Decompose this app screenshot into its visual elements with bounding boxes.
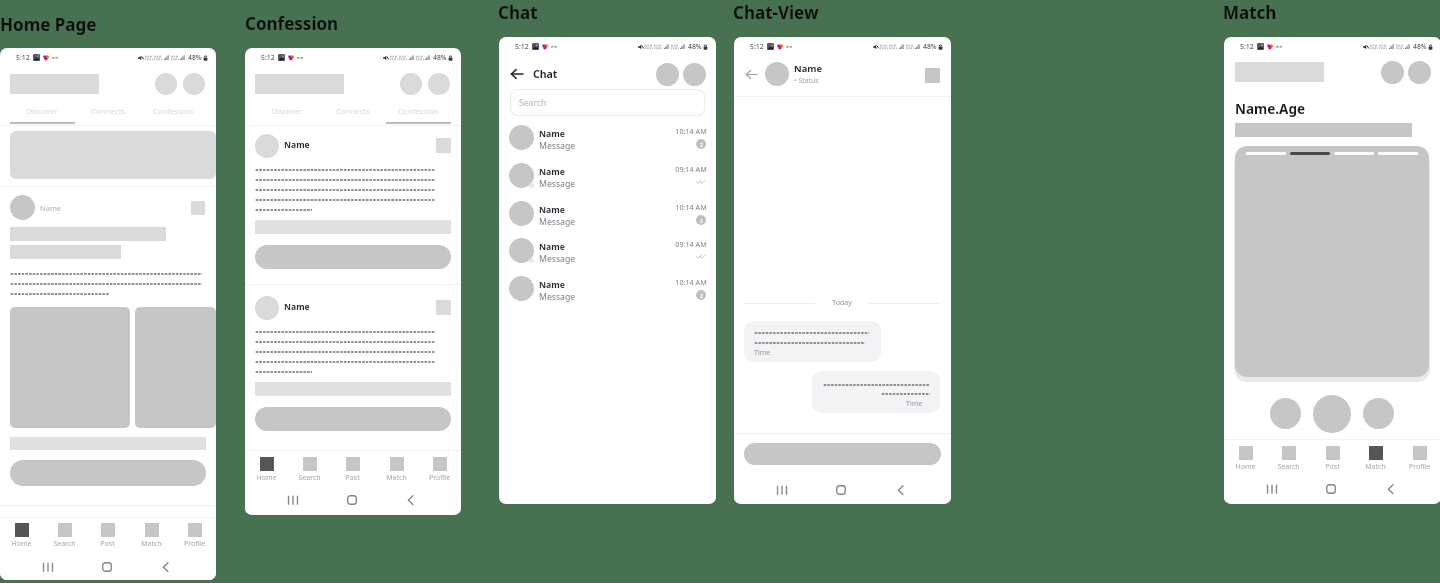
- button[interactable]: Home: [0, 520, 43, 548]
- button[interactable]: Back: [1383, 481, 1399, 497]
- button[interactable]: Contact avatar: [765, 62, 789, 86]
- staticText: • Status: [794, 76, 819, 85]
- button[interactable]: Name: [40, 203, 62, 213]
- button[interactable]: [744, 443, 941, 465]
- staticText: Name: [40, 203, 62, 213]
- staticText: 10:14 AM: [664, 277, 716, 287]
- staticText: Name: [284, 301, 310, 313]
- button[interactable]: Home: [1323, 481, 1339, 497]
- button[interactable]: Home: [245, 454, 288, 482]
- staticText: Confession: [141, 106, 205, 116]
- staticText: 48%: [1413, 42, 1427, 51]
- staticText: Post: [86, 539, 129, 549]
- staticText: Search: [43, 539, 86, 549]
- button[interactable]: Author avatar: [255, 134, 279, 158]
- button[interactable]: Notifications: [1381, 61, 1404, 84]
- staticText: Search: [288, 473, 331, 483]
- button[interactable]: Post: [86, 520, 129, 548]
- button[interactable]: Home: [1224, 443, 1267, 471]
- button[interactable]: Name: [284, 301, 310, 313]
- button[interactable]: Author avatar: [10, 195, 35, 220]
- button[interactable]: Profile: [418, 454, 461, 482]
- staticText: Discover: [12, 106, 72, 116]
- button[interactable]: Profile: [183, 73, 205, 95]
- button[interactable]: Name: [499, 158, 716, 195]
- button[interactable]: Discover: [12, 106, 72, 116]
- staticText: 5:12: [750, 42, 764, 51]
- staticText: Connects: [78, 106, 138, 116]
- button[interactable]: Post: [331, 454, 374, 482]
- button[interactable]: Back: [745, 68, 758, 81]
- staticText: 2: [700, 141, 703, 148]
- staticText: 10:14 AM: [664, 126, 716, 136]
- button[interactable]: Recents: [285, 492, 301, 508]
- button[interactable]: Search: [43, 520, 86, 548]
- staticText: 5:12: [16, 53, 30, 62]
- button[interactable]: Profile: [428, 73, 450, 95]
- button[interactable]: Name: [499, 120, 716, 157]
- button[interactable]: Match: [130, 520, 173, 548]
- button[interactable]: Profile: [683, 63, 706, 86]
- staticText: Match: [1223, 1, 1277, 24]
- button[interactable]: Profile: [173, 520, 216, 548]
- button[interactable]: Super Like: [1363, 398, 1394, 429]
- button[interactable]: Connects: [323, 106, 383, 116]
- staticText: Home Page: [0, 13, 97, 36]
- button[interactable]: Recents: [774, 482, 790, 498]
- staticText: Confession: [245, 12, 339, 35]
- button[interactable]: Comment: [255, 245, 451, 269]
- staticText: Match: [1354, 462, 1397, 472]
- button[interactable]: Back: [403, 492, 419, 508]
- staticText: 10:14 AM: [664, 202, 716, 212]
- button[interactable]: Comment: [10, 460, 206, 486]
- button[interactable]: Like: [1313, 395, 1351, 433]
- staticText: Chat-View: [733, 1, 819, 24]
- button[interactable]: Recents: [40, 559, 56, 575]
- button[interactable]: Home: [99, 559, 115, 575]
- button[interactable]: Name: [284, 139, 310, 151]
- button[interactable]: Dislike: [1270, 398, 1301, 429]
- button[interactable]: Comment: [255, 407, 451, 431]
- button[interactable]: Name: [499, 233, 716, 270]
- button[interactable]: Name: [499, 271, 716, 308]
- staticText: 48%: [688, 42, 702, 51]
- staticText: 48%: [188, 53, 202, 62]
- button[interactable]: Home: [833, 482, 849, 498]
- button[interactable]: Back: [510, 67, 524, 81]
- staticText: 09:14 AM: [664, 164, 716, 174]
- button[interactable]: Search: [1267, 443, 1310, 471]
- staticText: 5:12: [261, 53, 275, 62]
- button[interactable]: Confession: [141, 106, 205, 116]
- staticText: Discover: [257, 106, 317, 116]
- button[interactable]: Match: [375, 454, 418, 482]
- button[interactable]: Name: [499, 196, 716, 233]
- button[interactable]: Search: [511, 90, 704, 115]
- staticText: Time: [754, 348, 771, 358]
- staticText: Time: [906, 399, 923, 409]
- button[interactable]: Confession: [386, 106, 450, 116]
- button[interactable]: Match: [1354, 443, 1397, 471]
- button[interactable]: Home: [344, 492, 360, 508]
- button[interactable]: New chat: [656, 63, 679, 86]
- button[interactable]: Notifications: [155, 73, 177, 95]
- staticText: Message: [539, 291, 576, 303]
- button[interactable]: Author avatar: [255, 296, 279, 320]
- button[interactable]: Notifications: [400, 73, 422, 95]
- button[interactable]: Back: [158, 559, 174, 575]
- button[interactable]: Recents: [1264, 481, 1280, 497]
- button[interactable]: Profile: [1398, 443, 1440, 471]
- button[interactable]: Search: [288, 454, 331, 482]
- staticText: Home: [245, 473, 288, 483]
- button[interactable]: Discover: [257, 106, 317, 116]
- button[interactable]: Back: [893, 482, 909, 498]
- button[interactable]: Profile: [1408, 61, 1431, 84]
- button[interactable]: Connects: [78, 106, 138, 116]
- button[interactable]: Post: [1311, 443, 1354, 471]
